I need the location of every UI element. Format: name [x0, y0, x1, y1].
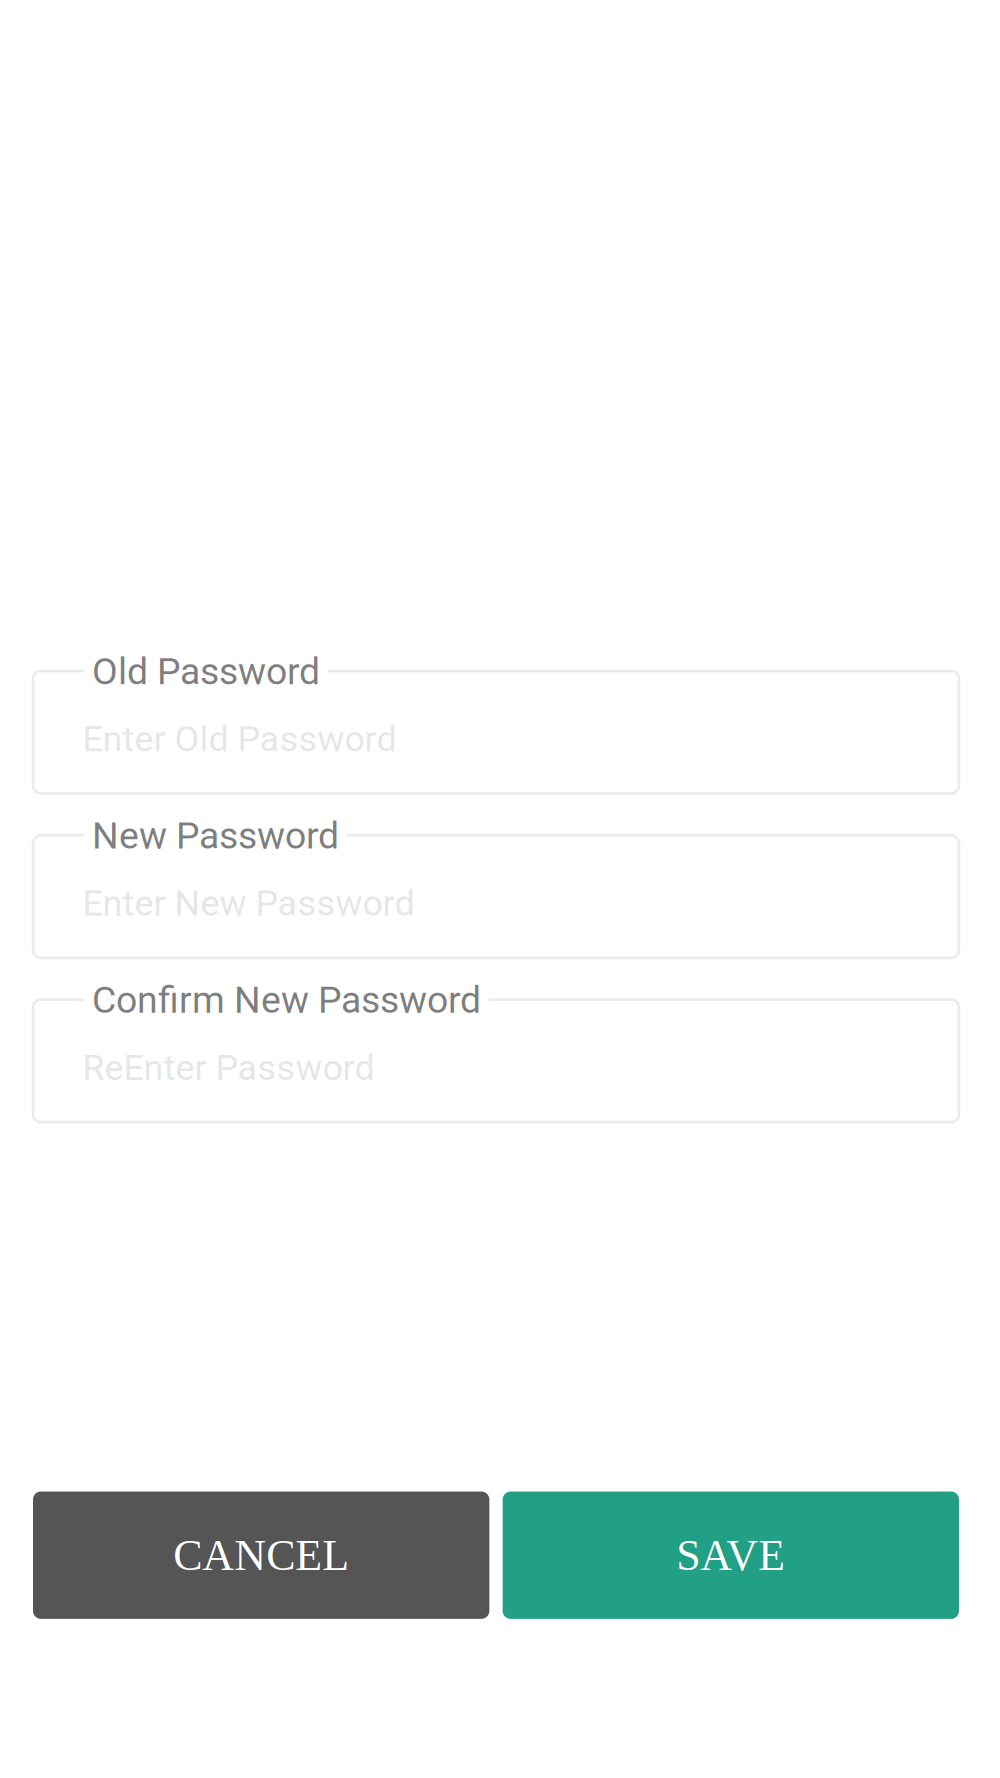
staticText: ReEnter Password [82, 1047, 374, 1089]
staticText: Old Password [92, 649, 320, 693]
staticText: Enter Old Password [82, 718, 396, 760]
staticText: CANCEL [173, 1531, 349, 1579]
button[interactable]: Enter New Password [33, 835, 959, 958]
staticText: SAVE [676, 1531, 785, 1579]
staticText: New Password [92, 814, 339, 857]
button[interactable]: ReEnter Password [33, 1000, 959, 1122]
button[interactable]: Enter Old Password [33, 671, 959, 793]
staticText: Confirm New Password [92, 978, 481, 1022]
button[interactable]: SAVE [503, 1491, 959, 1619]
button[interactable]: CANCEL [33, 1491, 489, 1619]
staticText: Enter New Password [82, 882, 414, 924]
